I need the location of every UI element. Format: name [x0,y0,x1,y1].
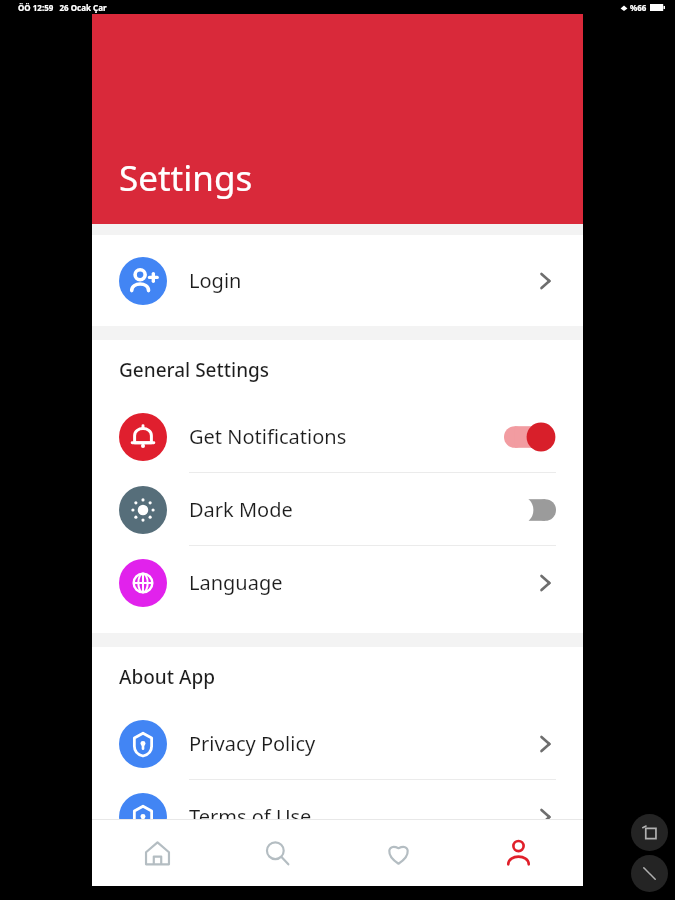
button[interactable]: Favorites [343,820,453,886]
staticText: %66 [630,2,647,13]
button[interactable]: Toggle on [504,422,556,452]
button[interactable]: Terms of Use [92,780,583,853]
staticText: Language [189,569,283,596]
staticText: Settings [119,154,253,202]
button[interactable]: Dark Mode [92,473,583,546]
staticText: Terms of Use [189,803,312,830]
staticText: About App [119,664,215,690]
staticText: Login [189,267,242,294]
button[interactable]: Search [222,820,332,886]
button[interactable]: Privacy Policy [92,707,583,780]
staticText: ÖÖ 12:59 26 Ocak Çar [18,2,107,13]
button[interactable]: Profile [463,820,573,886]
button[interactable]: Rotate [631,814,668,851]
button[interactable]: Home [102,820,212,886]
staticText: General Settings [119,357,270,383]
button[interactable]: Language [92,546,583,619]
button[interactable]: Toggle off [504,495,556,525]
button[interactable]: Resize [631,855,668,892]
button[interactable]: Login [92,235,583,326]
staticText: Get Notifications [189,423,347,450]
staticText: Dark Mode [189,496,293,523]
staticText: Privacy Policy [189,730,316,757]
button[interactable]: Get Notifications [92,400,583,473]
